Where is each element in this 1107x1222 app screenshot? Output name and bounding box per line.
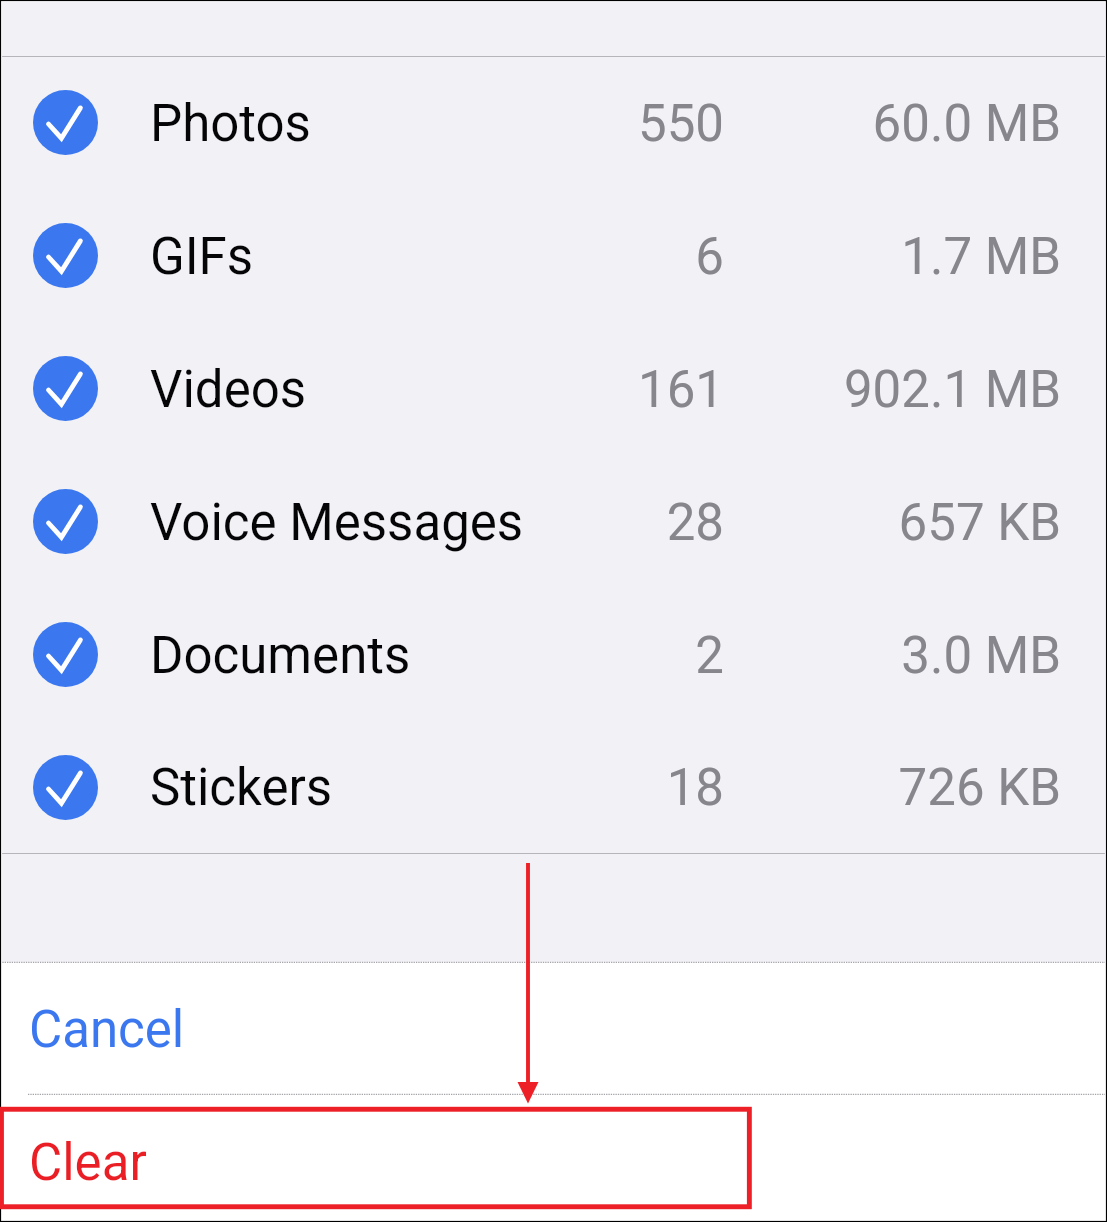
staticText: 18 (0, 758, 724, 818)
button[interactable]: Documents selected (0, 589, 1107, 722)
staticText: 902.1 MB (0, 360, 1061, 420)
button[interactable]: Voice Messages selected (0, 456, 1107, 589)
button[interactable]: Photos selected (0, 57, 1107, 190)
staticText: 550 (0, 94, 724, 154)
button[interactable]: Photos selected (33, 90, 98, 155)
button[interactable]: Videos selected (0, 323, 1107, 456)
staticText: 161 (0, 360, 724, 420)
button[interactable]: Videos selected (33, 356, 98, 421)
staticText: 1.7 MB (0, 227, 1061, 287)
staticText: 60.0 MB (0, 94, 1061, 154)
staticText: 28 (0, 493, 724, 553)
button[interactable]: Clear (0, 1095, 1107, 1222)
staticText: Clear (29, 1133, 147, 1193)
staticText: 657 KB (0, 493, 1061, 553)
button[interactable]: Voice Messages selected (33, 489, 98, 554)
staticText: Photos (150, 94, 311, 154)
staticText: Videos (150, 360, 307, 420)
staticText: Cancel (29, 1000, 185, 1060)
staticText: 6 (0, 227, 724, 287)
staticText: 726 KB (0, 758, 1061, 818)
staticText: GIFs (150, 227, 254, 287)
staticText: Voice Messages (150, 493, 524, 553)
button[interactable]: Stickers selected (33, 755, 98, 820)
staticText: 3.0 MB (0, 626, 1061, 686)
button[interactable]: Documents selected (33, 622, 98, 687)
staticText: 2 (0, 626, 724, 686)
button[interactable]: GIFs selected (33, 223, 98, 288)
button[interactable]: Stickers selected (0, 722, 1107, 853)
button[interactable]: GIFs selected (0, 190, 1107, 323)
button[interactable]: Cancel (0, 963, 1107, 1094)
staticText: Documents (150, 626, 411, 686)
staticText: Stickers (150, 758, 333, 818)
